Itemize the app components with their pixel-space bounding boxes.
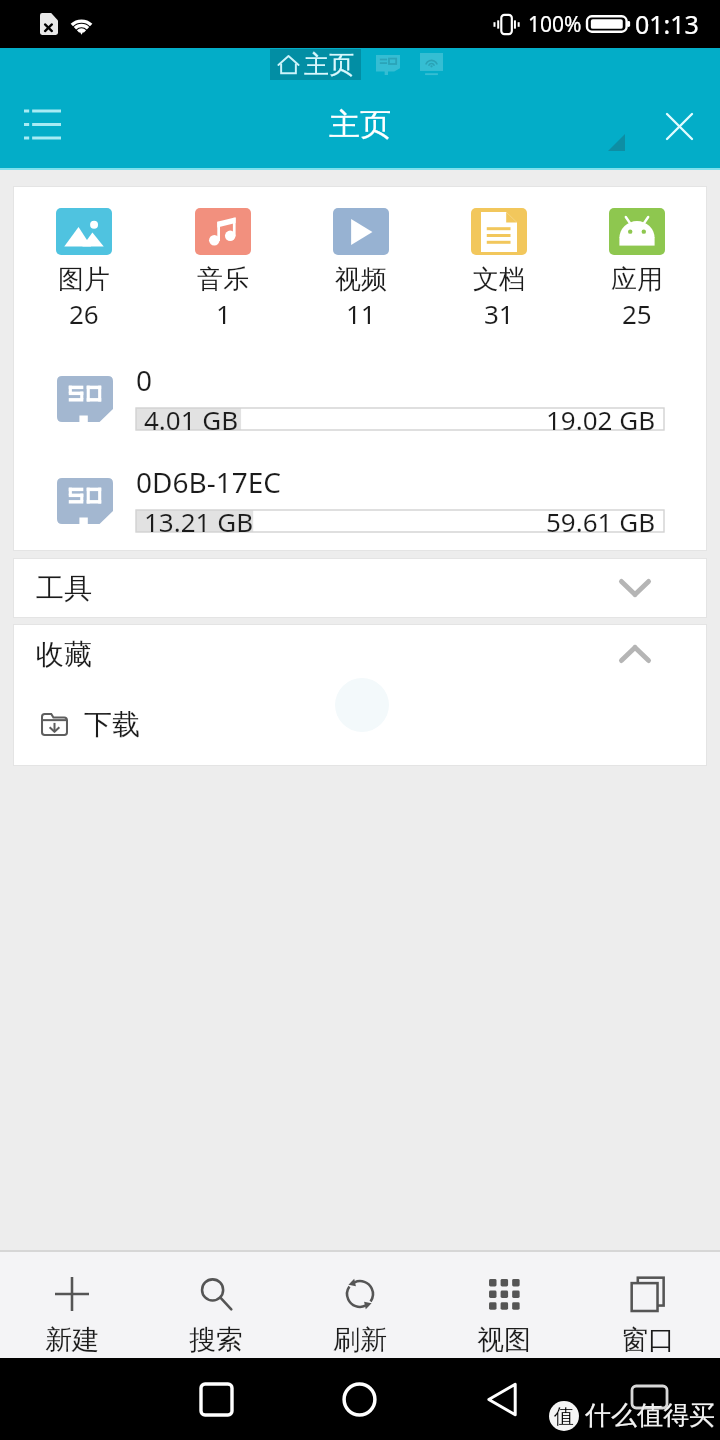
staticText: 25 <box>622 296 652 331</box>
button[interactable]: Home <box>311 1358 407 1440</box>
staticText: 0 <box>136 361 153 399</box>
button[interactable]: Back <box>454 1358 550 1440</box>
button[interactable]: 视频 <box>333 208 389 331</box>
button[interactable]: Network <box>420 53 443 76</box>
button[interactable]: 音乐 <box>195 208 251 331</box>
staticText: 文档 <box>473 263 525 296</box>
button[interactable]: 窗口 <box>576 1252 720 1358</box>
staticText: 4.01 GB <box>144 402 239 437</box>
staticText: 01:13 <box>635 7 699 41</box>
staticText: 主页 <box>304 49 354 80</box>
staticText: 值 <box>554 1404 574 1429</box>
button[interactable]: 刷新 <box>288 1252 432 1358</box>
button[interactable]: Recents <box>168 1358 264 1440</box>
button[interactable]: 搜索 <box>144 1252 288 1358</box>
button[interactable]: Close <box>648 95 710 157</box>
staticText: 工具 <box>36 571 92 606</box>
button[interactable]: 新建 <box>0 1252 144 1358</box>
button[interactable]: 工具 <box>14 559 706 617</box>
staticText: 100% <box>528 10 582 39</box>
staticText: 1 <box>216 296 231 331</box>
staticText: 刷新 <box>333 1323 387 1357</box>
button[interactable]: 收藏 <box>14 625 706 683</box>
button[interactable]: SD card <box>376 55 400 75</box>
button[interactable]: 视图 <box>432 1252 576 1358</box>
staticText: 主页 <box>329 105 391 144</box>
button[interactable]: 0D6B-17EC <box>14 463 706 539</box>
staticText: 应用 <box>611 263 663 296</box>
button[interactable]: 应用 <box>609 208 665 331</box>
staticText: 0D6B-17EC <box>136 463 281 501</box>
button[interactable]: 下载 <box>14 683 706 765</box>
button[interactable]: Menu <box>6 86 78 160</box>
staticText: 下载 <box>84 707 140 742</box>
staticText: 收藏 <box>36 637 92 672</box>
button[interactable]: 0 <box>14 361 706 437</box>
staticText: 窗口 <box>621 1323 675 1357</box>
staticText: 搜索 <box>189 1323 243 1357</box>
staticText: 19.02 GB <box>546 402 656 437</box>
staticText: 59.61 GB <box>546 504 656 539</box>
staticText: 新建 <box>45 1323 99 1357</box>
staticText: 图片 <box>58 263 110 296</box>
staticText: 视频 <box>335 263 387 296</box>
staticText: 11 <box>346 296 376 331</box>
staticText: 什么值得买 <box>585 1399 715 1432</box>
button[interactable]: 文档 <box>471 208 527 331</box>
staticText: 视图 <box>477 1323 531 1357</box>
staticText: 13.21 GB <box>144 504 254 539</box>
button[interactable]: 主页 <box>270 49 361 80</box>
button[interactable]: 图片 <box>56 208 112 331</box>
staticText: 31 <box>484 296 514 331</box>
staticText: 26 <box>69 296 99 331</box>
staticText: 音乐 <box>197 263 249 296</box>
